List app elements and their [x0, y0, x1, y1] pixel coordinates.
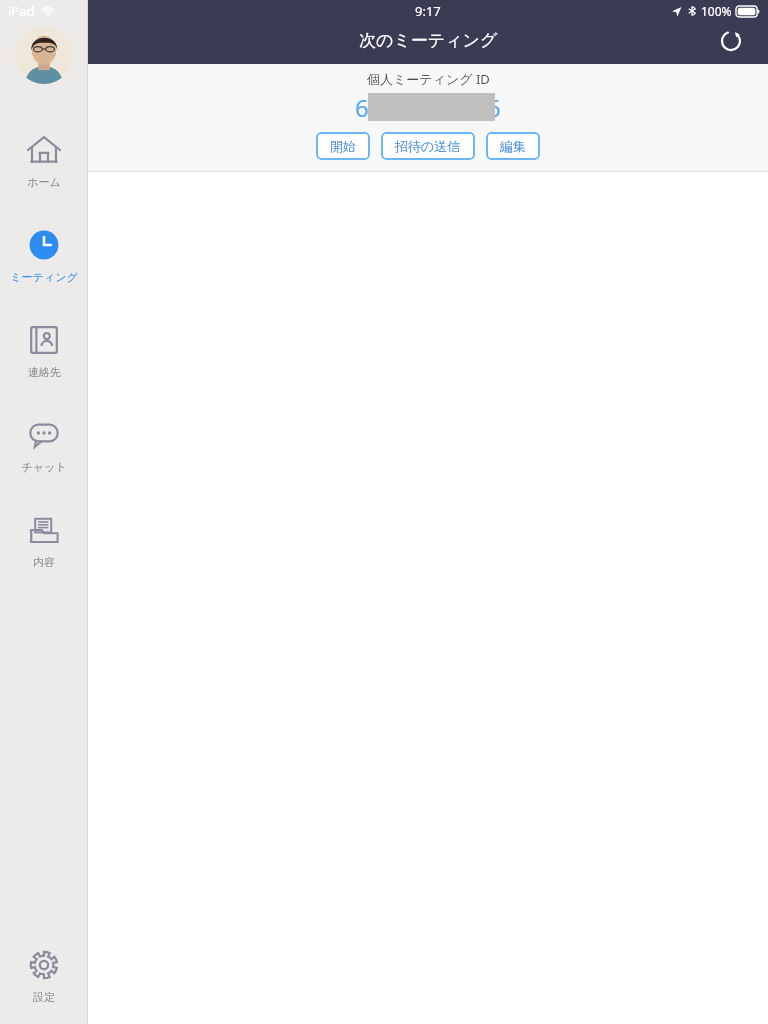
staticText: ホーム	[27, 175, 61, 189]
staticText: 100%	[701, 3, 732, 19]
button[interactable]: 招待の送信	[381, 132, 475, 160]
button[interactable]: チャット	[0, 413, 88, 476]
button[interactable]: 編集	[486, 132, 540, 160]
staticText: 内容	[33, 555, 55, 569]
button[interactable]: 連絡先	[0, 318, 88, 381]
button[interactable]: ホーム	[0, 128, 88, 191]
staticText: 連絡先	[28, 365, 61, 379]
staticText: 招待の送信	[395, 138, 461, 154]
staticText: 設定	[33, 990, 55, 1004]
staticText: 個人ミーティング ID	[367, 70, 490, 88]
staticText: 編集	[500, 138, 526, 154]
staticText: ミーティング	[10, 270, 78, 284]
staticText: 開始	[330, 138, 356, 154]
button[interactable]: 設定	[0, 943, 88, 1006]
button[interactable]: Profile	[15, 26, 73, 84]
staticText: 6	[487, 91, 501, 124]
staticText: iPad	[8, 2, 35, 20]
staticText: 次のミーティング	[359, 30, 498, 51]
button[interactable]: Refresh	[716, 26, 746, 56]
button[interactable]: 内容	[0, 508, 88, 571]
button[interactable]: ミーティング	[0, 223, 88, 286]
staticText: 9:17	[415, 2, 441, 20]
staticText: 6	[355, 91, 369, 124]
staticText: チャット	[21, 460, 67, 474]
button[interactable]: 開始	[316, 132, 370, 160]
